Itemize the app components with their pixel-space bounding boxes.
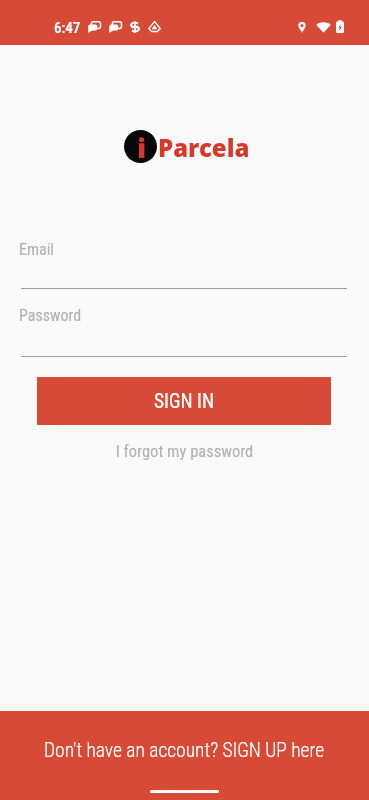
button[interactable]: Password: [21, 302, 347, 357]
other: Drive: [148, 20, 161, 33]
other: Messages: [88, 21, 101, 33]
button[interactable]: Don't have an account? SIGN UP here: [44, 739, 325, 762]
other: Battery charging: [336, 20, 344, 33]
button[interactable]: I forgot my password: [0, 442, 369, 461]
other: Wi-Fi: [316, 21, 331, 33]
other: Bank notification: [130, 21, 140, 33]
other: Messages: [109, 21, 122, 33]
staticText: 6:47: [54, 19, 81, 37]
button[interactable]: Email: [21, 236, 347, 289]
other: Parcela logo: [124, 130, 157, 163]
staticText: Password: [19, 306, 82, 325]
staticText: Email: [19, 240, 55, 259]
staticText: SIGN IN: [154, 390, 215, 413]
other: Location: [298, 21, 306, 33]
button[interactable]: SIGN IN: [37, 377, 331, 425]
staticText: Parcela: [158, 131, 250, 164]
